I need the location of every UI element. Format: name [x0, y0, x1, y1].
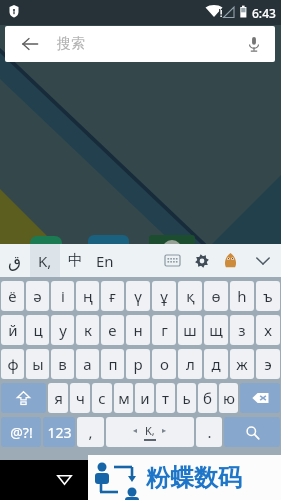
button[interactable]: Back	[5, 26, 275, 62]
staticText: ш	[183, 320, 197, 340]
button[interactable]: Hide keyboard	[44, 460, 84, 500]
staticText: 搜索	[57, 35, 85, 53]
button[interactable]: ق	[0, 244, 30, 277]
button[interactable]: ң	[76, 281, 99, 311]
staticText: ә	[33, 286, 42, 306]
button[interactable]: б	[198, 383, 217, 413]
button[interactable]: ұ	[152, 281, 176, 311]
staticText: і	[61, 286, 65, 306]
staticText: h	[237, 286, 247, 306]
staticText: л	[186, 354, 195, 374]
button[interactable]: э	[256, 349, 280, 379]
staticText: г	[161, 320, 168, 340]
button[interactable]: ш	[178, 315, 202, 345]
button[interactable]: л	[178, 349, 202, 379]
button[interactable]: х	[256, 315, 280, 345]
button[interactable]: й	[1, 315, 24, 345]
button[interactable]: ъ	[256, 281, 280, 311]
button[interactable]: 123	[43, 417, 75, 447]
button[interactable]: р	[126, 349, 150, 379]
staticText: о	[160, 354, 169, 374]
staticText: ы	[32, 354, 44, 374]
button[interactable]: ә	[26, 281, 49, 311]
button[interactable]: @?!	[1, 417, 41, 447]
staticText: е	[108, 320, 117, 340]
staticText: ж	[236, 354, 248, 374]
button[interactable]: а	[76, 349, 99, 379]
button[interactable]: ё	[1, 281, 24, 311]
button[interactable]: Search	[224, 417, 280, 447]
button[interactable]: Voice search	[233, 26, 275, 62]
button[interactable]: Shift	[1, 383, 46, 413]
staticText: K,	[38, 251, 52, 271]
staticText: қ	[186, 286, 195, 306]
button[interactable]: ,	[77, 417, 104, 447]
staticText: ұ	[160, 286, 168, 306]
staticText: и	[140, 388, 150, 408]
button[interactable]: ү	[126, 281, 150, 311]
button[interactable]: д	[204, 349, 228, 379]
button[interactable]: ж	[230, 349, 254, 379]
staticText: п	[108, 354, 118, 374]
button[interactable]: і	[51, 281, 74, 311]
staticText: н	[133, 320, 143, 340]
button[interactable]: ю	[219, 383, 238, 413]
staticText: K,	[145, 423, 155, 438]
staticText: ғ	[109, 286, 116, 306]
button[interactable]: ц	[26, 315, 49, 345]
staticText: д	[211, 354, 221, 374]
button[interactable]: ь	[177, 383, 196, 413]
staticText: ь	[182, 388, 191, 408]
button[interactable]: K,	[30, 244, 60, 277]
staticText: ё	[8, 286, 17, 306]
staticText: 中	[68, 251, 83, 270]
button[interactable]: ғ	[101, 281, 124, 311]
button[interactable]: щ	[204, 315, 228, 345]
button[interactable]: з	[230, 315, 254, 345]
staticText: .	[207, 422, 212, 442]
button[interactable]: Emoji	[216, 244, 245, 277]
button[interactable]: е	[101, 315, 124, 345]
button[interactable]: .	[196, 417, 222, 447]
staticText: э	[264, 354, 272, 374]
button[interactable]: м	[114, 383, 133, 413]
button[interactable]: h	[230, 281, 254, 311]
staticText: En	[96, 251, 114, 271]
staticText: ц	[33, 320, 43, 340]
button[interactable]: о	[152, 349, 176, 379]
button[interactable]: к	[76, 315, 99, 345]
button[interactable]: и	[135, 383, 154, 413]
button[interactable]: с	[92, 383, 112, 413]
staticText: ю	[223, 388, 235, 408]
button[interactable]: En	[90, 244, 120, 277]
staticText: я	[54, 388, 63, 408]
button[interactable]: г	[152, 315, 176, 345]
button[interactable]: ч	[70, 383, 90, 413]
button[interactable]: у	[51, 315, 74, 345]
button[interactable]: ф	[1, 349, 24, 379]
staticText: ү	[134, 286, 142, 306]
button[interactable]: қ	[178, 281, 202, 311]
staticText: 粉蝶数码	[146, 463, 242, 493]
button[interactable]: Change keyboard	[158, 244, 187, 277]
button[interactable]: Space	[106, 417, 194, 447]
button[interactable]: т	[156, 383, 175, 413]
button[interactable]: ы	[26, 349, 49, 379]
button[interactable]: Settings	[187, 244, 216, 277]
button[interactable]: Back	[11, 26, 49, 62]
button[interactable]: п	[101, 349, 124, 379]
button[interactable]: 中	[60, 244, 90, 277]
button[interactable]: Hide keyboard	[245, 244, 281, 277]
button[interactable]: я	[48, 383, 68, 413]
staticText: с	[98, 388, 106, 408]
button[interactable]: н	[126, 315, 150, 345]
staticText: х	[264, 320, 272, 340]
staticText: ң	[83, 286, 93, 306]
staticText: р	[133, 354, 143, 374]
button[interactable]: ө	[204, 281, 228, 311]
staticText: й	[8, 320, 18, 340]
button[interactable]: в	[51, 349, 74, 379]
staticText: у	[59, 320, 67, 340]
staticText: ф	[7, 354, 19, 374]
button[interactable]: Backspace	[240, 383, 280, 413]
